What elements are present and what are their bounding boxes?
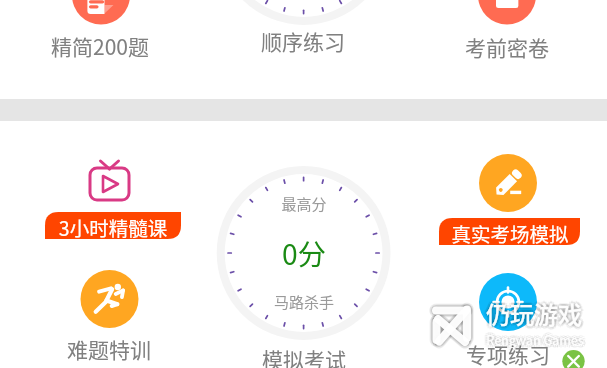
- staticText: Rengwan Games: [428, 330, 607, 349]
- staticText: 仍玩游戏: [424, 293, 607, 329]
- staticText: Rengwan Games: [425, 333, 607, 352]
- staticText: 仍玩游戏: [422, 294, 607, 330]
- staticText: Rengwan Games: [422, 330, 607, 349]
- staticText: Rengwan Games: [427, 328, 607, 347]
- staticText: 难题特训: [0, 334, 219, 366]
- button[interactable]: 专项练习: [418, 268, 598, 364]
- staticText: Rengwan Games: [425, 329, 607, 348]
- staticText: 仍玩游戏: [424, 294, 607, 330]
- staticText: 3小时精髓课: [3, 213, 223, 242]
- staticText: 仍玩游戏: [427, 296, 607, 332]
- staticText: Rengwan Games: [424, 330, 607, 349]
- staticText: 仍玩游戏: [422, 298, 607, 334]
- button[interactable]: 模拟考试: [214, 160, 394, 368]
- staticText: 0分: [194, 232, 414, 274]
- staticText: 考前密卷: [397, 32, 607, 64]
- staticText: 马路杀手: [194, 291, 414, 314]
- staticText: 仍玩游戏: [424, 296, 607, 332]
- staticText: 专项练习: [398, 339, 607, 368]
- staticText: 仍玩游戏: [424, 299, 607, 335]
- staticText: Rengwan Games: [425, 330, 607, 349]
- staticText: 仍玩游戏: [426, 298, 607, 334]
- button[interactable]: 考前密卷: [416, 0, 598, 60]
- staticText: Rengwan Games: [425, 332, 607, 351]
- staticText: 最高分: [194, 193, 414, 216]
- staticText: 模拟考试: [194, 344, 414, 368]
- staticText: 仍玩游戏: [424, 297, 607, 333]
- staticText: 仍玩游戏: [426, 296, 607, 332]
- staticText: 顺序练习: [193, 26, 413, 58]
- staticText: Rengwan Games: [423, 332, 607, 351]
- staticText: 仍玩游戏: [426, 294, 607, 330]
- button[interactable]: 3小时精髓课: [20, 150, 200, 245]
- staticText: 真实考场模拟: [400, 219, 607, 248]
- staticText: 仍玩游戏: [423, 296, 607, 332]
- button[interactable]: 顺序练习: [212, 0, 394, 56]
- staticText: Rengwan Games: [423, 328, 607, 347]
- staticText: Rengwan Games: [427, 332, 607, 351]
- staticText: 精简200题: [0, 31, 210, 63]
- button[interactable]: 难题特训: [20, 262, 200, 362]
- button[interactable]: 精简200题: [10, 0, 192, 60]
- staticText: 仍玩游戏: [421, 296, 607, 332]
- button[interactable]: 真实考场模拟: [418, 150, 598, 245]
- staticText: Rengwan Games: [425, 327, 607, 346]
- staticText: Rengwan Games: [427, 330, 607, 349]
